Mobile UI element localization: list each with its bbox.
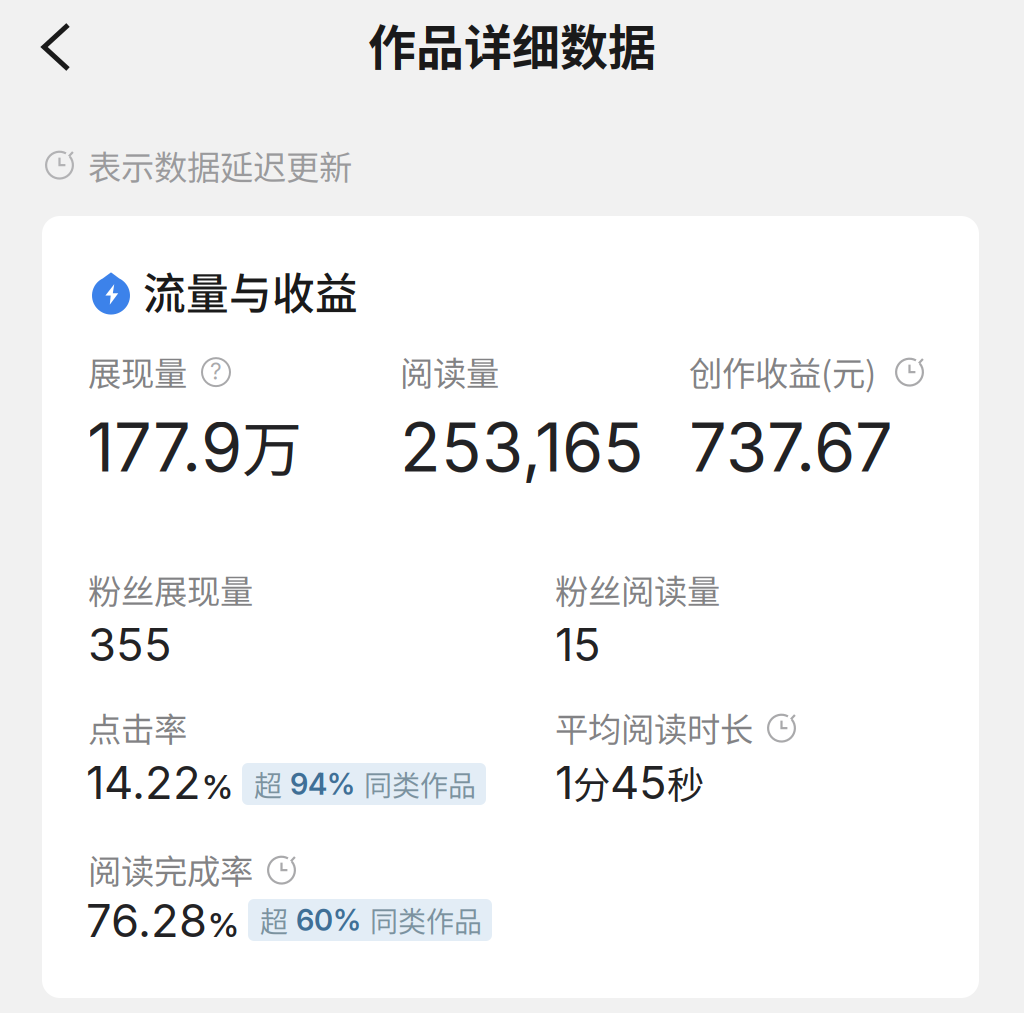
staticText: 平均阅读时长 (555, 703, 753, 751)
staticText: 同类作品 (364, 764, 476, 804)
staticText: 万 (242, 402, 302, 489)
staticText: 流量与收益 (143, 260, 358, 322)
staticText: 14.22 (86, 755, 201, 810)
staticText: 表示数据延迟更新 (88, 141, 352, 189)
button[interactable]: 关于展现量 (202, 357, 230, 385)
staticText: 超 (260, 900, 288, 940)
staticText: 点击率 (88, 703, 187, 751)
button[interactable]: Back (17, 7, 95, 87)
staticText: 超 (254, 764, 282, 804)
staticText: 76.28 (86, 893, 207, 948)
staticText: 177.9 (87, 407, 242, 488)
staticText: 同类作品 (370, 900, 482, 940)
staticText: ? (210, 357, 222, 385)
staticText: 45 (610, 755, 667, 810)
staticText: % (202, 767, 233, 807)
staticText: 秒 (667, 756, 704, 810)
staticText: 分 (573, 756, 610, 810)
staticText: 展现量 (88, 347, 187, 395)
staticText: 作品详细数据 (368, 9, 656, 79)
staticText: 253,165 (400, 407, 644, 488)
staticText: 15 (555, 617, 601, 672)
staticText: 粉丝阅读量 (555, 565, 720, 613)
staticText: 创作收益(元) (689, 347, 876, 395)
staticText: 94% (290, 766, 355, 802)
staticText: 355 (88, 617, 172, 672)
staticText: % (208, 905, 239, 945)
staticText: 阅读量 (400, 347, 499, 395)
staticText: 阅读完成率 (88, 845, 253, 893)
staticText: 1 (555, 755, 573, 810)
staticText: 60% (296, 902, 361, 938)
staticText: 粉丝展现量 (88, 565, 253, 613)
staticText: 737.67 (689, 407, 893, 488)
